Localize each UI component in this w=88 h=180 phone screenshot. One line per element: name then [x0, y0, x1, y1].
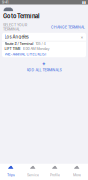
staticText: Route # / Terminal — [4, 42, 33, 46]
staticText: 9:41 — [2, 0, 10, 4]
staticText: SELECT YOUR TERMINAL — [3, 23, 27, 31]
staticText: + — [42, 60, 46, 67]
button[interactable]: Service — [22, 164, 44, 177]
staticText: 8:00 AM Monday — [22, 47, 49, 51]
staticText: ▮▮ — [82, 0, 86, 4]
staticText: PRE-ARRIVAL CHECKLIST — [4, 52, 46, 56]
staticText: Profile — [50, 173, 60, 177]
button[interactable]: CHANGE TERMINAL — [51, 25, 85, 29]
staticText: Go to Terminal — [3, 13, 40, 19]
staticText: Trips — [7, 173, 15, 177]
staticText: ADD ALL TERMINALS — [26, 68, 61, 72]
button[interactable]: Trips — [0, 164, 22, 177]
staticText: More — [73, 173, 81, 177]
button[interactable]: More — [66, 164, 88, 177]
button[interactable]: PRE-ARRIVAL CHECKLIST — [2, 51, 86, 57]
staticText: × — [80, 34, 83, 39]
staticText: LIFT TIME — [4, 47, 20, 51]
staticText: Los Angeles — [4, 34, 28, 39]
button[interactable]: + — [0, 57, 88, 72]
button[interactable]: Profile — [44, 164, 66, 177]
staticText: CHANGE TERMINAL — [51, 25, 85, 29]
staticText: Service — [27, 173, 39, 177]
staticText: 105 / 4 — [35, 42, 45, 46]
